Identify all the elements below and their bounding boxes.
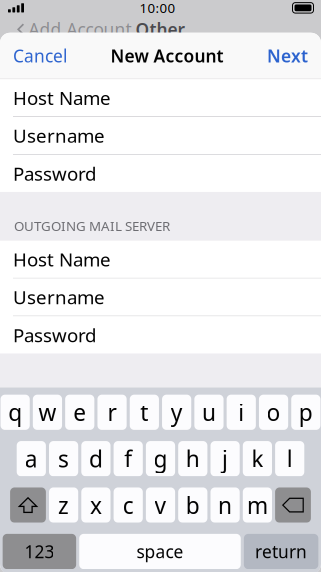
staticText: Host Name [13,85,111,110]
button[interactable]: s [49,441,78,476]
button[interactable]: Host Name [0,241,321,278]
staticText: Password [13,161,96,186]
staticText: o [267,397,281,427]
staticText: b [186,490,200,520]
button[interactable]: Next [267,44,308,67]
staticText: e [73,397,86,427]
staticText: return [255,540,307,563]
staticText: n [218,490,232,520]
button[interactable]: h [178,441,207,476]
staticText: k [251,444,263,474]
staticText: f [124,444,132,474]
staticText: p [299,397,313,427]
button[interactable]: Shift [10,487,46,523]
staticText: Add Account [29,18,132,41]
button[interactable]: Host Name [0,79,321,116]
button[interactable]: k [243,441,272,476]
staticText: New Account [110,44,223,67]
staticText: Host Name [13,247,111,272]
staticText: OUTGOING MAIL SERVER [14,217,170,235]
button[interactable]: return [244,534,318,569]
staticText: a [25,444,38,474]
staticText: c [123,490,134,520]
staticText: space [136,540,183,563]
button[interactable]: z [49,487,78,523]
button[interactable]: Delete [275,487,311,523]
staticText: Username [13,123,105,148]
staticText: Password [13,322,96,347]
button[interactable]: f [114,441,143,476]
staticText: l [287,444,293,474]
button[interactable]: p [291,395,320,430]
staticText: y [171,397,183,427]
staticText: Username [13,285,105,309]
button[interactable]: t [130,395,159,430]
button[interactable]: u [194,395,224,430]
staticText: m [247,490,268,520]
button[interactable]: Password [0,316,321,353]
button[interactable]: n [210,487,240,523]
button[interactable]: g [146,441,175,476]
staticText: j [222,444,228,474]
button[interactable]: y [162,395,191,430]
button[interactable]: Username [0,279,321,316]
staticText: u [202,397,216,427]
staticText: 123 [24,540,54,563]
button[interactable]: c [114,487,143,523]
button[interactable]: a [17,441,46,476]
staticText: 10:00 [139,0,175,17]
staticText: i [238,397,244,427]
button[interactable]: space [79,534,241,569]
staticText: Other [135,18,185,41]
staticText: h [186,444,200,474]
staticText: z [58,490,69,520]
button[interactable]: r [97,395,127,430]
staticText: Cancel [13,44,67,67]
button[interactable]: Username [0,117,321,154]
staticText: w [38,397,56,427]
staticText: x [90,490,102,520]
button[interactable]: x [81,487,110,523]
staticText: r [107,397,116,427]
button[interactable]: Cancel [13,44,67,67]
button[interactable]: o [259,395,288,430]
button[interactable]: Password [0,155,321,192]
button[interactable]: d [81,441,110,476]
button[interactable]: b [178,487,207,523]
button[interactable]: q [1,395,30,430]
staticText: g [153,444,167,474]
staticText: q [8,397,22,427]
button[interactable]: m [243,487,272,523]
staticText: s [58,444,69,474]
staticText: v [154,490,166,520]
button[interactable]: i [227,395,256,430]
button[interactable]: w [33,395,62,430]
staticText: t [140,397,148,427]
staticText: d [89,444,103,474]
staticText: Next [267,44,308,67]
button[interactable]: 123 [3,534,76,569]
button[interactable]: l [275,441,304,476]
button[interactable]: e [65,395,94,430]
button[interactable]: v [146,487,175,523]
button[interactable]: j [210,441,240,476]
